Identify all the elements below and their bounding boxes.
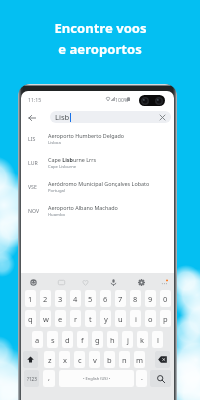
staticText: Aeródromo Municipal Gonçalves Lobato	[48, 180, 150, 187]
staticText: 7	[118, 294, 123, 304]
staticText: m	[136, 355, 144, 365]
staticText: x	[63, 355, 67, 365]
staticText: 5	[88, 294, 93, 304]
button[interactable]: o	[145, 310, 156, 327]
button[interactable]: 9	[145, 290, 156, 307]
button[interactable]: j	[122, 331, 133, 348]
button[interactable]: 7	[115, 290, 126, 307]
button[interactable]: GIF	[56, 277, 67, 288]
button[interactable]: d	[62, 331, 73, 348]
button[interactable]: 8	[130, 290, 141, 307]
button[interactable]: i	[130, 310, 141, 327]
staticText: 100%	[115, 96, 129, 103]
button[interactable]: x	[59, 351, 70, 368]
button[interactable]: e	[55, 310, 66, 327]
staticText: LIS	[28, 135, 36, 142]
staticText: d	[65, 335, 70, 345]
button[interactable]: q	[25, 310, 36, 327]
staticText: e aeroportos	[58, 40, 142, 58]
staticText: 4	[73, 294, 78, 304]
button[interactable]: Settings	[136, 277, 147, 288]
button[interactable]: y	[100, 310, 111, 327]
button[interactable]: t	[85, 310, 96, 327]
button[interactable]: 3	[55, 290, 66, 307]
staticText: h	[110, 335, 115, 345]
staticText: Cape Lisburne	[48, 164, 77, 170]
staticText: s	[51, 335, 55, 345]
staticText: 0	[163, 294, 168, 304]
staticText: g	[95, 335, 100, 345]
button[interactable]: • English (US) •	[59, 370, 134, 387]
button[interactable]: LIS	[21, 127, 174, 151]
staticText: i	[135, 314, 137, 324]
staticText: u	[118, 314, 123, 324]
staticText: e	[58, 314, 63, 324]
staticText: 11:15	[28, 96, 42, 103]
staticText: f	[81, 335, 84, 345]
staticText: ?123	[27, 376, 37, 382]
staticText: j	[127, 335, 129, 345]
staticText: p	[163, 314, 168, 324]
staticText: Aeroporto Humberto Delgado	[48, 132, 125, 139]
button[interactable]: Voice input	[108, 277, 119, 288]
button[interactable]: w	[40, 310, 51, 327]
button[interactable]: l	[152, 331, 163, 348]
button[interactable]: a	[32, 331, 43, 348]
staticText: Huambo	[48, 212, 66, 218]
staticText: r	[74, 314, 78, 324]
button[interactable]: g	[92, 331, 103, 348]
staticText: Cape Lisburne Lrrs	[48, 156, 97, 163]
button[interactable]: n	[119, 351, 130, 368]
button[interactable]: 2	[40, 290, 51, 307]
button[interactable]: 5	[85, 290, 96, 307]
button[interactable]: Search	[150, 370, 171, 387]
button[interactable]: f	[77, 331, 88, 348]
button[interactable]: s	[47, 331, 58, 348]
staticText: 8	[133, 294, 138, 304]
staticText: v	[93, 355, 97, 365]
button[interactable]: LUR	[21, 151, 174, 175]
button[interactable]: NOV	[21, 199, 174, 223]
staticText: q	[28, 314, 33, 324]
staticText: NOV	[28, 207, 40, 214]
button[interactable]: h	[107, 331, 118, 348]
staticText: b	[107, 355, 112, 365]
button[interactable]: Lisb	[50, 111, 171, 123]
button[interactable]: Emoji	[28, 277, 39, 288]
button[interactable]: Back	[25, 111, 38, 124]
button[interactable]: .	[136, 370, 147, 387]
button[interactable]: Shift	[23, 351, 38, 368]
button[interactable]: u	[115, 310, 126, 327]
button[interactable]: p	[160, 310, 171, 327]
button[interactable]: VSE	[21, 175, 174, 199]
staticText: c	[78, 355, 82, 365]
button[interactable]: ,	[43, 370, 55, 387]
staticText: o	[148, 314, 153, 324]
staticText: ,	[48, 373, 50, 383]
staticText: .	[141, 373, 143, 383]
button[interactable]: Backspace	[155, 351, 170, 368]
button[interactable]: v	[89, 351, 100, 368]
button[interactable]: r	[70, 310, 81, 327]
button[interactable]: ?123	[24, 370, 39, 387]
button[interactable]: Stickers	[80, 277, 91, 288]
button[interactable]: Clear search	[158, 113, 167, 122]
button[interactable]: 4	[70, 290, 81, 307]
button[interactable]: m	[134, 351, 145, 368]
button[interactable]: 6	[100, 290, 111, 307]
button[interactable]: k	[137, 331, 148, 348]
staticText: t	[89, 314, 92, 324]
button[interactable]: z	[44, 351, 55, 368]
staticText: 3	[58, 294, 63, 304]
staticText: n	[122, 355, 127, 365]
button[interactable]: More	[159, 277, 170, 288]
staticText: Aeroporto Albano Machado	[48, 204, 118, 211]
staticText: 6	[103, 294, 108, 304]
button[interactable]: b	[104, 351, 115, 368]
button[interactable]: c	[74, 351, 85, 368]
staticText: Lisb	[55, 112, 70, 122]
staticText: Portugal	[48, 188, 65, 194]
staticText: 9	[148, 294, 153, 304]
button[interactable]: 1	[25, 290, 36, 307]
button[interactable]: 0	[160, 290, 171, 307]
